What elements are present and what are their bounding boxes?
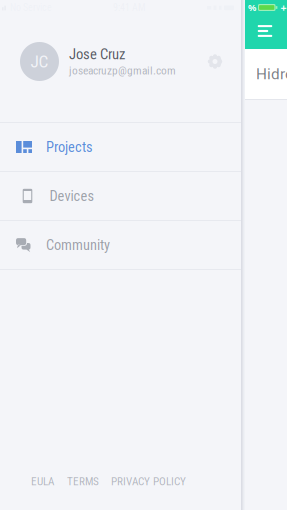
button[interactable]: EULA [31, 475, 54, 488]
staticText: Community [46, 237, 110, 253]
staticText: JC [30, 51, 48, 72]
staticText: Devices [49, 188, 94, 204]
button[interactable]: TERMS [67, 475, 99, 488]
staticText: Jose Cruz [69, 46, 125, 63]
button[interactable]: Projects [0, 123, 241, 172]
staticText: TERMS [67, 475, 99, 488]
staticText: % [248, 1, 256, 14]
button[interactable]: PRIVACY POLICY [111, 475, 186, 488]
button[interactable]: Open navigation menu [255, 21, 275, 41]
button[interactable]: Settings [202, 48, 228, 74]
button[interactable]: Devices [0, 172, 241, 221]
staticText: Projects [46, 139, 93, 155]
staticText: + [280, 0, 286, 15]
staticText: PRIVACY POLICY [111, 475, 186, 488]
staticText: Hidroponia [256, 65, 287, 83]
button[interactable]: Community [0, 221, 241, 270]
staticText: EULA [31, 475, 54, 488]
staticText: joseacruzp@gmail.com [69, 64, 176, 77]
